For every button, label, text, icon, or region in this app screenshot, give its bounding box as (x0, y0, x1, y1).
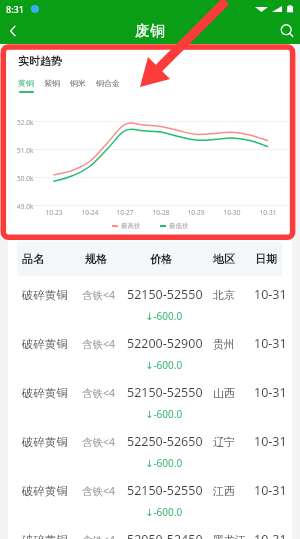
staticText: 价格 (150, 252, 172, 266)
staticText: 52150-52550 (127, 286, 203, 303)
staticText: 破碎黄铜 (22, 435, 68, 449)
staticText: 10-23 (42, 208, 66, 217)
button[interactable]: Search (274, 18, 300, 44)
staticText: 10-31 (254, 286, 287, 303)
staticText: 山西 (213, 386, 235, 400)
staticText: 10-31 (256, 208, 280, 217)
staticText: 黑龙江 (213, 533, 246, 539)
staticText: 破碎黄铜 (22, 484, 68, 498)
staticText: 含铁<4 (82, 386, 116, 400)
button[interactable]: 黄铜 (18, 78, 34, 93)
staticText: 52050-52450 (127, 531, 203, 539)
staticText: 黄铜 (18, 78, 34, 88)
staticText: 50.0k (17, 174, 34, 183)
button[interactable]: 破碎黄铜 (8, 466, 292, 515)
button[interactable]: 铜米 (70, 78, 86, 93)
staticText: 10-27 (113, 208, 137, 217)
staticText: 辽宁 (213, 435, 235, 449)
staticText: 贵州 (213, 337, 235, 351)
button[interactable]: 破碎黄铜 (8, 417, 292, 466)
staticText: 10-31 (254, 335, 287, 352)
staticText: 铜合金 (96, 78, 120, 88)
staticText: 破碎黄铜 (22, 386, 68, 400)
staticText: 日期 (255, 252, 277, 266)
staticText: 最低价 (169, 222, 189, 230)
staticText: 10-31 (254, 482, 287, 499)
staticText: 含铁<4 (82, 288, 116, 302)
staticText: 紫铜 (44, 78, 60, 88)
button[interactable]: 破碎黄铜 (8, 368, 292, 417)
staticText: ↓-600.0 (145, 309, 183, 323)
staticText: 8:31 (6, 3, 24, 15)
staticText: 含铁<4 (82, 337, 116, 351)
staticText: 52150-52550 (127, 384, 203, 401)
staticText: 49.0k (17, 202, 34, 211)
staticText: ↓-600.0 (145, 505, 183, 519)
staticText: 10-31 (254, 384, 287, 401)
staticText: 51.0k (17, 146, 34, 155)
staticText: 52.0k (17, 118, 34, 127)
staticText: 北京 (213, 288, 235, 302)
staticText: 10-28 (149, 208, 173, 217)
staticText: 52150-52550 (127, 482, 203, 499)
staticText: ↓-600.0 (145, 407, 183, 421)
staticText: ↓-600.0 (145, 358, 183, 372)
button[interactable]: 破碎黄铜 (8, 270, 292, 319)
staticText: 10-29 (184, 208, 208, 217)
button[interactable]: 破碎黄铜 (8, 319, 292, 368)
staticText: 含铁<4 (82, 435, 116, 449)
button[interactable]: 铜合金 (96, 78, 120, 93)
staticText: 规格 (85, 252, 107, 266)
staticText: 含铁<4 (82, 484, 116, 498)
button[interactable]: 破碎黄铜 (8, 515, 292, 539)
staticText: ↓-600.0 (145, 456, 183, 470)
staticText: 江西 (213, 484, 235, 498)
staticText: 品名 (22, 252, 44, 266)
staticText: 废铜 (135, 22, 165, 41)
staticText: 最高价 (121, 222, 141, 230)
staticText: 破碎黄铜 (22, 533, 68, 539)
staticText: 实时趋势 (18, 54, 62, 68)
staticText: 含铁<4 (82, 533, 116, 539)
staticText: 铜米 (70, 78, 86, 88)
staticText: 10-30 (220, 208, 244, 217)
button[interactable]: Back (0, 18, 26, 44)
staticText: 10-31 (254, 433, 287, 450)
staticText: 破碎黄铜 (22, 288, 68, 302)
button[interactable]: 紫铜 (44, 78, 60, 93)
staticText: 52250-52650 (127, 433, 203, 450)
staticText: 破碎黄铜 (22, 337, 68, 351)
staticText: 10-24 (78, 208, 102, 217)
staticText: 10-31 (254, 531, 287, 539)
staticText: 地区 (213, 252, 235, 266)
staticText: 52200-52900 (127, 335, 203, 352)
